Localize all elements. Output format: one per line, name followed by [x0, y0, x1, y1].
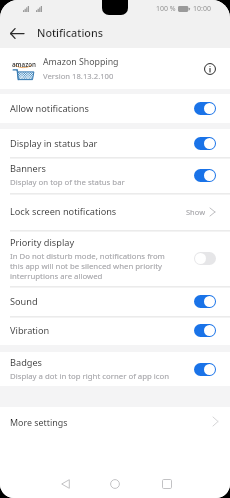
button[interactable]: Sound	[0, 286, 230, 316]
staticText: Amazon Shopping	[43, 56, 119, 68]
staticText: amazon	[12, 60, 36, 68]
button[interactable]: App info	[201, 60, 219, 78]
staticText: Vibration	[10, 324, 50, 337]
button[interactable]: Vibration	[0, 316, 230, 345]
button[interactable]: Recents	[156, 473, 178, 495]
staticText: Show	[186, 207, 206, 217]
staticText: Allow notifications	[10, 102, 89, 115]
button[interactable]: Toggle on	[194, 324, 216, 337]
button[interactable]: Home	[104, 473, 126, 495]
staticText: Badges	[10, 356, 43, 369]
staticText: 100 %	[156, 4, 176, 14]
button[interactable]: Lock screen notifications	[0, 193, 230, 230]
button[interactable]: More settings	[0, 407, 230, 436]
button[interactable]: Toggle on	[194, 102, 216, 115]
button[interactable]: Allow notifications	[0, 94, 230, 123]
staticText: More settings	[10, 416, 213, 428]
staticText: Lock screen notifications	[10, 205, 117, 218]
staticText: Sound	[10, 295, 38, 308]
button[interactable]: Display in status bar	[0, 129, 230, 157]
staticText: Display on top of the status bar	[10, 177, 125, 188]
button[interactable]: amazon	[0, 48, 230, 89]
staticText: 10:00	[193, 4, 211, 14]
staticText: In Do not disturb mode, notifications fr…	[10, 251, 165, 281]
staticText: Notifications	[37, 25, 103, 40]
button[interactable]: Banners	[0, 157, 230, 193]
button[interactable]: Back	[7, 23, 27, 43]
button[interactable]: Toggle on	[194, 169, 216, 182]
staticText: Banners	[10, 162, 46, 175]
button[interactable]: Back	[54, 473, 76, 495]
staticText: Priority display	[10, 236, 75, 249]
button[interactable]: Show	[185, 207, 216, 217]
button[interactable]: Toggle on	[194, 363, 216, 376]
button[interactable]: Badges	[0, 352, 230, 386]
staticText: Version 18.13.2.100	[43, 71, 114, 81]
button[interactable]: Priority display	[0, 230, 230, 286]
button[interactable]: Toggle on	[194, 137, 216, 150]
button[interactable]: Toggle off	[194, 252, 216, 265]
staticText: Display in status bar	[10, 137, 98, 150]
button[interactable]: Toggle on	[194, 295, 216, 308]
staticText: Display a dot in top right corner of app…	[10, 371, 170, 382]
